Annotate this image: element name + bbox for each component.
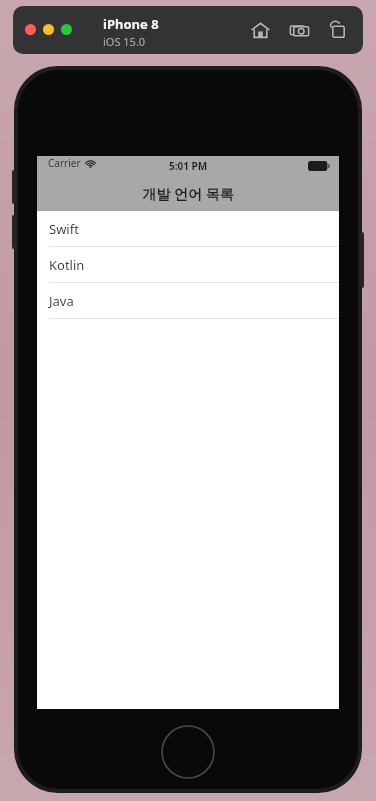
staticText: iOS 15.0 [103,34,146,49]
staticText: Kotlin [49,256,85,274]
button[interactable]: Java [37,283,339,319]
staticText: 개발 언어 목록 [142,184,234,203]
staticText: Swift [49,220,79,238]
staticText: iPhone 8 [103,15,159,33]
button[interactable]: Screenshot [287,18,311,42]
staticText: Carrier [48,156,81,170]
button[interactable]: Swift [37,211,339,247]
button[interactable] [43,24,54,35]
button[interactable] [61,24,72,35]
staticText: 5:01 PM [169,159,208,173]
button[interactable]: Home button [161,725,215,779]
button[interactable]: Rotate [326,18,350,42]
button[interactable]: Home [248,18,272,42]
button[interactable] [25,24,36,35]
button[interactable]: Kotlin [37,247,339,283]
staticText: Java [49,292,74,310]
